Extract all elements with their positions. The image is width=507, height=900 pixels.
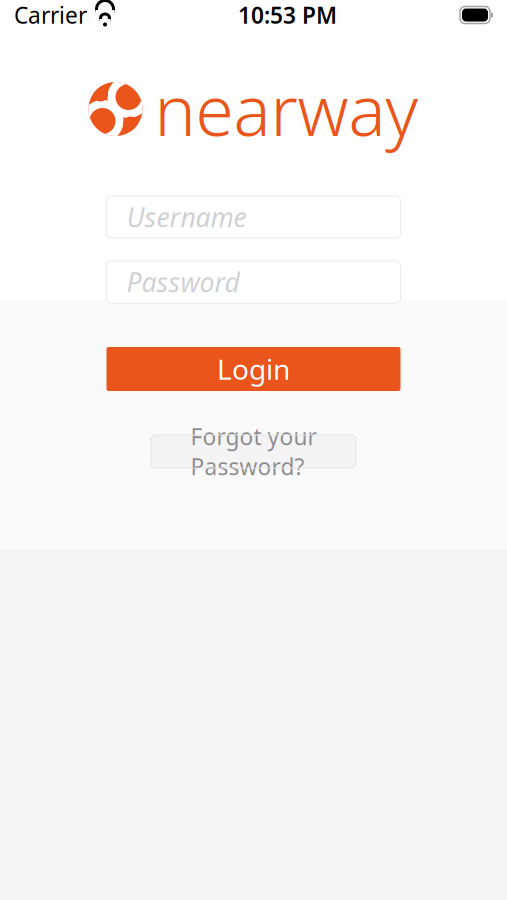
button[interactable]: Forgot your Password? [151,435,356,468]
staticText: Username [126,199,246,235]
staticText: nearway [154,63,418,155]
staticText: Password [126,264,239,300]
staticText: Login [217,350,290,388]
button[interactable]: Login [106,347,400,391]
staticText: 10:53 PM [238,0,337,30]
staticText: Forgot your Password? [190,421,316,482]
staticText: Carrier [14,0,87,30]
